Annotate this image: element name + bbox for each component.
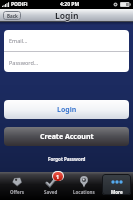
staticText: Locations xyxy=(73,189,95,195)
button[interactable]: Create Account xyxy=(4,127,129,146)
staticText: Offers xyxy=(10,189,24,195)
staticText: Create Account xyxy=(40,132,94,142)
button[interactable]: Email... xyxy=(4,30,129,51)
staticText: Password... xyxy=(9,59,39,66)
button[interactable]: Login xyxy=(4,100,129,119)
button[interactable]: Saved xyxy=(34,172,67,200)
staticText: Forgot Password xyxy=(48,156,86,162)
staticText: Saved xyxy=(44,189,58,195)
button[interactable]: Forgot Password xyxy=(48,156,86,162)
staticText: PODiFi xyxy=(11,1,28,8)
staticText: Back xyxy=(7,13,18,19)
staticText: Email... xyxy=(9,37,28,44)
staticText: Login xyxy=(55,10,79,22)
staticText: More xyxy=(111,189,123,195)
staticText: 4:20 PM xyxy=(60,1,80,8)
button[interactable]: Offers xyxy=(0,172,34,200)
staticText: Login xyxy=(57,105,77,115)
button[interactable]: More xyxy=(100,172,133,200)
staticText: 1 xyxy=(56,173,60,180)
button[interactable]: Locations xyxy=(67,172,100,200)
button[interactable]: Password... xyxy=(4,52,129,72)
button[interactable]: Back xyxy=(3,11,21,20)
